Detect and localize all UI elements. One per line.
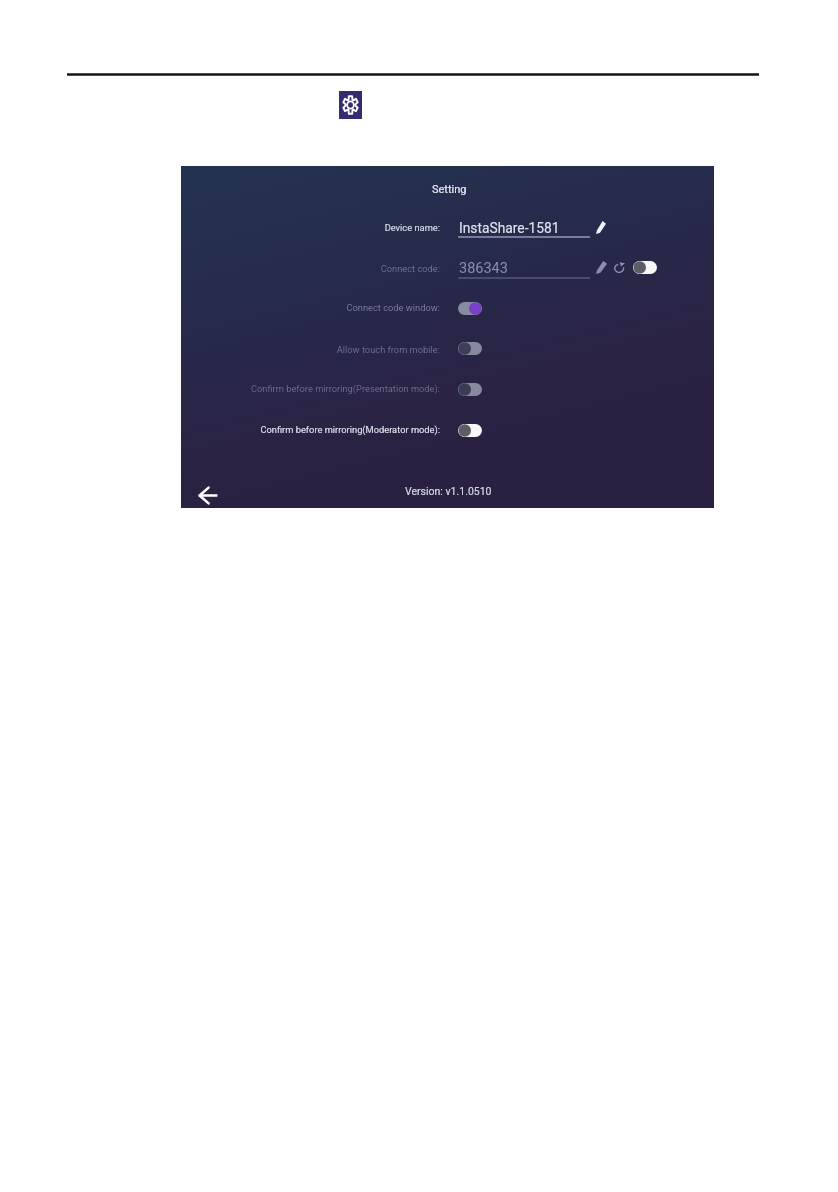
staticText: Device name: <box>181 222 440 233</box>
staticText: Confirm before mirroring(Moderator mode)… <box>181 424 440 435</box>
staticText: Version: v1.1.0510 <box>405 485 492 497</box>
staticText: Confirm before mirroring(Presentation mo… <box>181 383 440 394</box>
button[interactable]: Settings <box>339 91 362 119</box>
staticText: Setting <box>432 183 467 196</box>
button[interactable]: Connect code window <box>458 302 482 315</box>
button[interactable]: Confirm before mirroring Moderator mode <box>458 424 482 437</box>
button[interactable]: Refresh connect code <box>614 262 625 273</box>
button[interactable]: Allow touch from mobile <box>458 342 482 355</box>
staticText: Allow touch from mobile: <box>181 344 440 355</box>
staticText: Connect code: <box>181 263 440 274</box>
staticText: 386343 <box>459 260 508 277</box>
staticText: InstaShare-1581 <box>459 220 560 236</box>
button[interactable]: Confirm before mirroring Presentation mo… <box>458 383 482 396</box>
button[interactable]: Show connect code <box>633 261 657 274</box>
button[interactable]: Edit device name <box>596 221 606 234</box>
button[interactable]: Back <box>198 487 218 504</box>
staticText: Connect code window: <box>181 302 440 313</box>
button[interactable]: Edit connect code <box>596 261 607 274</box>
